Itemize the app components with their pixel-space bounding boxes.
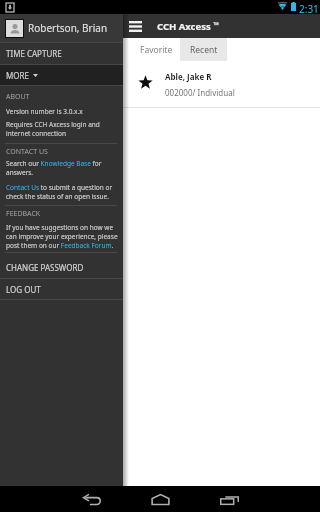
button[interactable]: Recent apps bbox=[207, 486, 251, 512]
staticText: Favorite bbox=[140, 44, 173, 56]
staticText: If you have suggestions on how we can im… bbox=[6, 223, 119, 250]
staticText: ABOUT bbox=[6, 92, 30, 102]
button[interactable]: CHANGE PASSWORD bbox=[0, 253, 123, 278]
staticText: CONTACT US bbox=[6, 147, 48, 157]
staticText: Able, Jake R bbox=[165, 71, 212, 82]
button[interactable]: Back bbox=[70, 486, 114, 512]
staticText: FEEDBACK bbox=[6, 209, 41, 219]
button[interactable]: TIME CAPTURE bbox=[0, 43, 123, 64]
staticText: CCH Axcess ™ bbox=[157, 20, 219, 33]
staticText: TIME CAPTURE bbox=[6, 48, 62, 59]
staticText: Robertson, Brian bbox=[28, 21, 108, 35]
button[interactable]: Favorite bbox=[132, 38, 180, 61]
staticText: LOG OUT bbox=[6, 284, 41, 295]
button[interactable]: Robertson, Brian bbox=[0, 14, 123, 42]
staticText: Requires CCH Axcess login and internet c… bbox=[6, 120, 119, 138]
button[interactable]: LOG OUT bbox=[0, 279, 123, 299]
button[interactable]: Recent bbox=[180, 38, 227, 61]
staticText: Version number is 3.0.x.x bbox=[6, 107, 83, 116]
staticText: Search our Knowledge Base for answers. bbox=[6, 159, 119, 177]
staticText: MORE bbox=[6, 70, 29, 81]
button[interactable]: Able, Jake R bbox=[0, 61, 320, 107]
staticText: CHANGE PASSWORD bbox=[6, 262, 84, 273]
button[interactable]: MORE bbox=[0, 65, 123, 85]
staticText: 2:31 bbox=[299, 2, 319, 16]
button[interactable]: Home bbox=[138, 486, 182, 512]
staticText: Contact Us to submit a question or check… bbox=[6, 183, 119, 201]
button[interactable]: Open navigation drawer bbox=[123, 14, 146, 38]
staticText: 002000/ Individual bbox=[165, 87, 235, 98]
staticText: Recent bbox=[190, 44, 218, 56]
